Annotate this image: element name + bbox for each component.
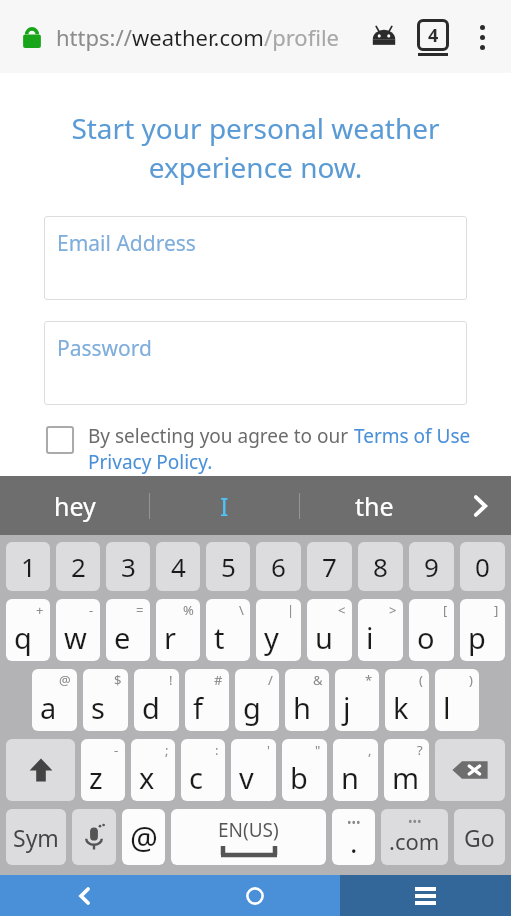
staticText: @: [59, 671, 71, 689]
button[interactable]: (: [385, 669, 429, 731]
staticText: [: [443, 601, 448, 619]
button[interactable]: Sym: [6, 809, 66, 865]
button[interactable]: ': [231, 739, 276, 801]
button[interactable]: Back: [0, 875, 170, 916]
button[interactable]: Email Address: [44, 216, 467, 300]
button[interactable]: #: [185, 669, 229, 731]
button[interactable]: Password: [44, 321, 467, 405]
button[interactable]: =: [106, 599, 150, 661]
button[interactable]: hey: [0, 476, 149, 535]
button[interactable]: :: [181, 739, 225, 801]
staticText: s: [91, 688, 105, 727]
button[interactable]: Menu: [340, 875, 511, 916]
staticText: 8: [373, 549, 388, 584]
button[interactable]: |: [256, 599, 301, 661]
button[interactable]: ?: [384, 739, 429, 801]
button[interactable]: \: [206, 599, 250, 661]
staticText: c: [189, 758, 203, 797]
staticText: 0: [475, 549, 490, 584]
staticText: ,: [368, 741, 372, 759]
button[interactable]: ,: [333, 739, 378, 801]
staticText: the: [355, 489, 394, 523]
button[interactable]: ): [435, 669, 479, 731]
staticText: |: [287, 601, 295, 619]
staticText: r: [164, 618, 176, 657]
button[interactable]: Shift: [6, 739, 75, 801]
button[interactable]: +: [6, 599, 50, 661]
button[interactable]: More options: [459, 14, 505, 60]
staticText: EN(US): [218, 817, 279, 843]
staticText: ': [267, 741, 270, 759]
button[interactable]: Tabs, 4 open: [407, 11, 459, 63]
button[interactable]: 7: [307, 542, 352, 591]
button[interactable]: Space: [171, 809, 326, 865]
button[interactable]: 9: [409, 542, 454, 591]
button[interactable]: 4: [156, 542, 200, 591]
staticText: j: [343, 688, 351, 727]
staticText: q: [14, 618, 32, 657]
staticText: i: [366, 618, 374, 657]
button[interactable]: &: [285, 669, 329, 731]
button[interactable]: •••: [332, 809, 375, 865]
button[interactable]: -: [81, 739, 125, 801]
button[interactable]: 1: [6, 542, 50, 591]
staticText: a: [40, 688, 57, 727]
staticText: hey: [54, 489, 96, 523]
button[interactable]: /: [235, 669, 279, 731]
button[interactable]: I: [150, 476, 299, 535]
staticText: v: [239, 758, 254, 797]
button[interactable]: @: [32, 669, 77, 731]
button[interactable]: >: [358, 599, 403, 661]
staticText: <: [338, 601, 346, 619]
button[interactable]: !: [134, 669, 179, 731]
staticText: l: [443, 688, 451, 727]
staticText: o: [417, 618, 435, 657]
button[interactable]: Voice input: [72, 809, 116, 865]
button[interactable]: 3: [106, 542, 150, 591]
staticText: *: [365, 671, 373, 689]
staticText: :: [215, 741, 219, 759]
staticText: Go: [464, 822, 495, 853]
staticText: b: [290, 758, 308, 797]
button[interactable]: Home: [170, 875, 340, 916]
button[interactable]: 6: [256, 542, 301, 591]
button[interactable]: Backspace: [435, 739, 505, 801]
button[interactable]: More suggestions: [449, 476, 511, 535]
button[interactable]: Go: [454, 809, 505, 865]
staticText: •••: [408, 813, 422, 829]
staticText: ;: [165, 741, 169, 759]
button[interactable]: 0: [460, 542, 505, 591]
button[interactable]: *: [335, 669, 379, 731]
button[interactable]: ": [282, 739, 327, 801]
button[interactable]: %: [156, 599, 200, 661]
button[interactable]: Android app: [361, 14, 407, 60]
other: Secure connection: [20, 25, 44, 49]
staticText: e: [114, 618, 131, 657]
button[interactable]: •••: [381, 809, 448, 865]
staticText: &: [313, 671, 323, 689]
button[interactable]: $: [83, 669, 128, 731]
staticText: w: [64, 618, 87, 657]
staticText: weather.com: [132, 22, 264, 52]
button[interactable]: the: [300, 476, 449, 535]
button[interactable]: -: [56, 599, 100, 661]
button[interactable]: 8: [358, 542, 403, 591]
staticText: n: [341, 758, 359, 797]
staticText: ]: [494, 601, 499, 619]
staticText: $: [114, 671, 122, 689]
staticText: 2: [71, 549, 86, 584]
button[interactable]: 2: [56, 542, 100, 591]
button[interactable]: By selecting you agree to our: [46, 423, 495, 475]
button[interactable]: ;: [131, 739, 175, 801]
staticText: https://: [56, 22, 132, 52]
button[interactable]: [: [409, 599, 454, 661]
staticText: 3: [121, 549, 136, 584]
button[interactable]: 5: [206, 542, 250, 591]
staticText: -: [89, 601, 94, 619]
staticText: I: [220, 489, 229, 523]
button[interactable]: @: [122, 809, 165, 865]
staticText: •••: [347, 814, 361, 830]
staticText: ?: [417, 741, 423, 759]
button[interactable]: ]: [460, 599, 505, 661]
button[interactable]: <: [307, 599, 352, 661]
